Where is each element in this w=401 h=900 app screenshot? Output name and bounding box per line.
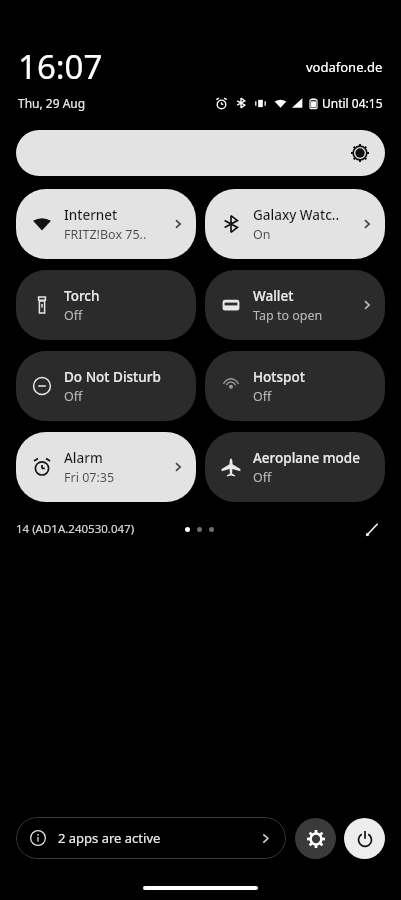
button[interactable]: Power (344, 818, 385, 859)
staticText: Alarm (64, 449, 103, 467)
staticText: Off (253, 388, 272, 405)
button[interactable]: Hotspot (205, 351, 385, 421)
staticText: FRITZ!Box 75.. (64, 226, 147, 243)
staticText: Off (64, 307, 83, 324)
staticText: 16:07 (18, 44, 103, 89)
staticText: Off (253, 469, 272, 486)
staticText: Hotspot (253, 368, 305, 386)
button[interactable]: Settings (295, 818, 336, 859)
staticText: Fri 07:35 (64, 469, 115, 486)
button[interactable]: Edit tiles (359, 516, 385, 542)
staticText: Tap to open (253, 307, 323, 324)
staticText: Until 04:15 (322, 95, 383, 111)
staticText: Aeroplane mode (253, 449, 360, 467)
button[interactable]: Wallet (205, 270, 385, 340)
staticText: Do Not Disturb (64, 368, 161, 386)
button[interactable]: Brightness (16, 130, 385, 176)
button[interactable]: Internet (16, 189, 196, 259)
button[interactable]: Alarm (16, 432, 196, 502)
button[interactable]: Galaxy Watc.. (205, 189, 385, 259)
staticText: Torch (64, 287, 100, 305)
button[interactable]: Aeroplane mode (205, 432, 385, 502)
staticText: Wallet (253, 287, 294, 305)
staticText: Galaxy Watc.. (253, 206, 340, 224)
button[interactable]: Do Not Disturb (16, 351, 196, 421)
staticText: Thu, 29 Aug (18, 95, 86, 111)
staticText: On (253, 226, 271, 243)
button[interactable]: Torch (16, 270, 196, 340)
staticText: Off (64, 388, 83, 405)
staticText: 2 apps are active (58, 829, 161, 847)
button[interactable]: 2 apps are active (16, 817, 286, 859)
staticText: vodafone.de (306, 58, 383, 76)
staticText: Internet (64, 206, 118, 224)
staticText: 14 (AD1A.240530.047) (16, 521, 135, 537)
